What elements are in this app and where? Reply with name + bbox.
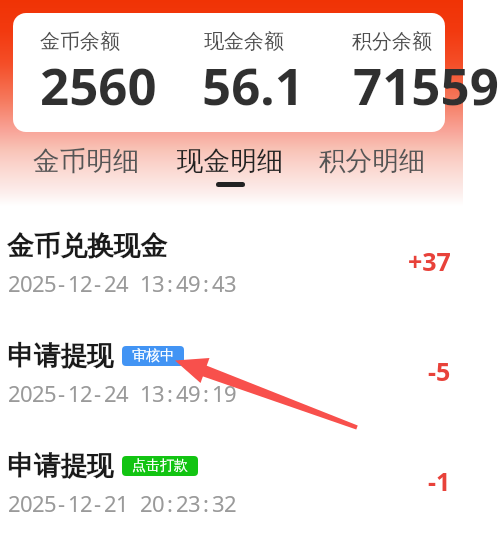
staticText: 0 [20, 268, 32, 298]
button[interactable]: 金币兑换现金 [0, 215, 500, 325]
staticText: : [203, 268, 209, 298]
staticText: 9 [224, 378, 236, 408]
staticText: 1 [140, 268, 152, 298]
staticText: 9 [188, 378, 200, 408]
staticText: 2 [140, 488, 152, 518]
staticText: 审核中 [132, 347, 174, 365]
staticText: 2 [8, 488, 20, 518]
staticText: 2 [104, 268, 116, 298]
staticText: 1 [116, 488, 128, 518]
staticText: 现金余额 [204, 29, 284, 54]
staticText: 4 [176, 378, 188, 408]
staticText: 2 [176, 488, 188, 518]
staticText: 2560 [40, 50, 157, 119]
staticText: 金币明细 [33, 144, 140, 178]
staticText: 1 [140, 378, 152, 408]
staticText: 金币余额 [40, 29, 120, 54]
staticText: 3 [188, 488, 200, 518]
staticText: -5 [428, 354, 451, 388]
staticText: 金币兑换现金 [7, 229, 168, 263]
staticText: : [167, 268, 173, 298]
staticText: - [94, 378, 102, 408]
button[interactable]: 申请提现 [0, 325, 500, 435]
button[interactable]: 申请提现 [0, 435, 500, 545]
staticText: 5 [44, 488, 56, 518]
button[interactable]: 金币明细 [14, 144, 158, 194]
button[interactable]: 现金明细 [158, 144, 302, 194]
staticText: : [167, 378, 173, 408]
staticText: - [58, 268, 66, 298]
staticText: 2 [32, 488, 44, 518]
staticText: 0 [20, 378, 32, 408]
staticText: 1 [68, 268, 80, 298]
staticText: 2 [104, 378, 116, 408]
staticText: 4 [116, 378, 128, 408]
staticText: - [58, 378, 66, 408]
staticText: 4 [212, 268, 224, 298]
staticText: 2 [224, 488, 236, 518]
staticText: -1 [428, 464, 451, 498]
staticText: 点击打款 [132, 457, 188, 475]
staticText: 3 [212, 488, 224, 518]
staticText: 2 [80, 268, 92, 298]
staticText: 申请提现 [7, 449, 114, 483]
staticText: : [203, 378, 209, 408]
staticText: 1 [68, 488, 80, 518]
staticText: +37 [408, 244, 451, 278]
staticText: 2 [32, 268, 44, 298]
button[interactable]: 积分明细 [300, 144, 444, 194]
staticText: 2 [80, 378, 92, 408]
staticText: 2 [8, 268, 20, 298]
staticText: 2 [80, 488, 92, 518]
staticText: 2 [104, 488, 116, 518]
staticText: - [58, 488, 66, 518]
staticText: 申请提现 [7, 339, 114, 373]
staticText: 3 [224, 268, 236, 298]
staticText: 2 [8, 378, 20, 408]
staticText: - [94, 488, 102, 518]
staticText: 0 [20, 488, 32, 518]
staticText: 56.1 [202, 50, 304, 119]
staticText: 积分明细 [319, 144, 426, 178]
staticText: 1 [68, 378, 80, 408]
staticText: 4 [116, 268, 128, 298]
staticText: 1 [212, 378, 224, 408]
staticText: : [203, 488, 209, 518]
staticText: - [94, 268, 102, 298]
staticText: 5 [44, 378, 56, 408]
staticText: 积分余额 [352, 29, 432, 54]
staticText: 3 [152, 268, 164, 298]
staticText: 现金明细 [177, 144, 284, 178]
staticText: : [167, 488, 173, 518]
staticText: 2 [32, 378, 44, 408]
staticText: 0 [152, 488, 164, 518]
staticText: 4 [176, 268, 188, 298]
staticText: 9 [188, 268, 200, 298]
staticText: 71559 [353, 50, 499, 119]
staticText: 5 [44, 268, 56, 298]
staticText: 3 [152, 378, 164, 408]
